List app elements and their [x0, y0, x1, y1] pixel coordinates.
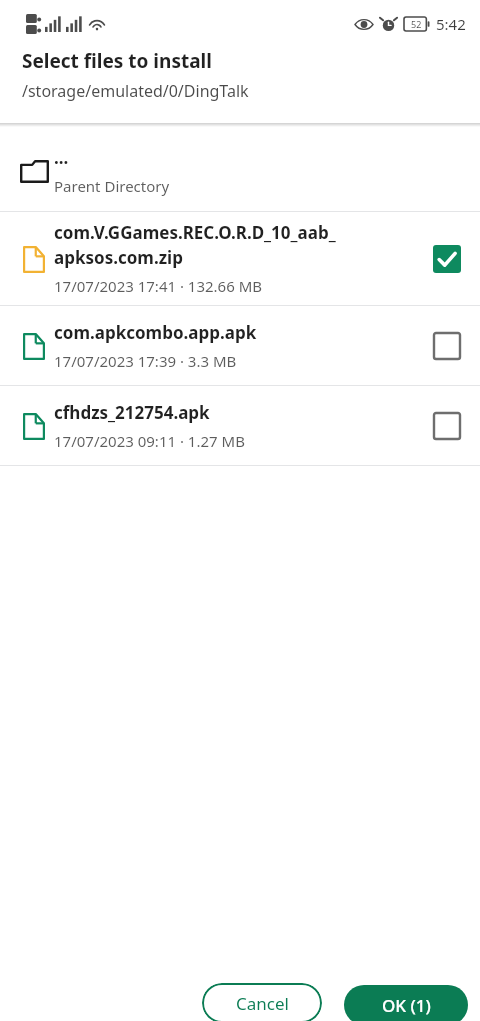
staticText: Cancel	[236, 992, 289, 1015]
button[interactable]: Selected, com.V.GGames.REC.O.R.D_10_aab_…	[430, 242, 464, 276]
staticText: Select files to install	[22, 48, 212, 74]
button[interactable]: ...	[0, 130, 480, 211]
staticText: 17/07/2023 17:39 · 3.3 MB	[54, 351, 237, 371]
staticText: ...	[54, 146, 69, 169]
button[interactable]: Not selected	[430, 409, 464, 443]
staticText: Parent Directory	[54, 176, 170, 196]
staticText: com.V.GGames.REC.O.R.D_10_aab_	[54, 221, 336, 244]
staticText: 17/07/2023 17:41 · 132.66 MB	[54, 276, 263, 296]
button[interactable]: OK (1)	[344, 985, 468, 1021]
staticText: cfhdzs_212754.apk	[54, 401, 210, 424]
staticText: 17/07/2023 09:11 · 1.27 MB	[54, 431, 245, 451]
button[interactable]: Cancel	[202, 983, 322, 1021]
staticText: 52	[411, 18, 422, 30]
staticText: apksos.com.zip	[54, 246, 183, 269]
button[interactable]: cfhdzs_212754.apk	[0, 386, 480, 465]
staticText: 5:42	[436, 14, 466, 34]
staticText: OK (1)	[382, 994, 431, 1017]
staticText: com.apkcombo.app.apk	[54, 321, 257, 344]
button[interactable]: com.V.GGames.REC.O.R.D_10_aab_	[0, 212, 480, 305]
button[interactable]: Not selected	[430, 329, 464, 363]
button[interactable]: com.apkcombo.app.apk	[0, 306, 480, 385]
staticText: /storage/emulated/0/DingTalk	[22, 80, 249, 102]
